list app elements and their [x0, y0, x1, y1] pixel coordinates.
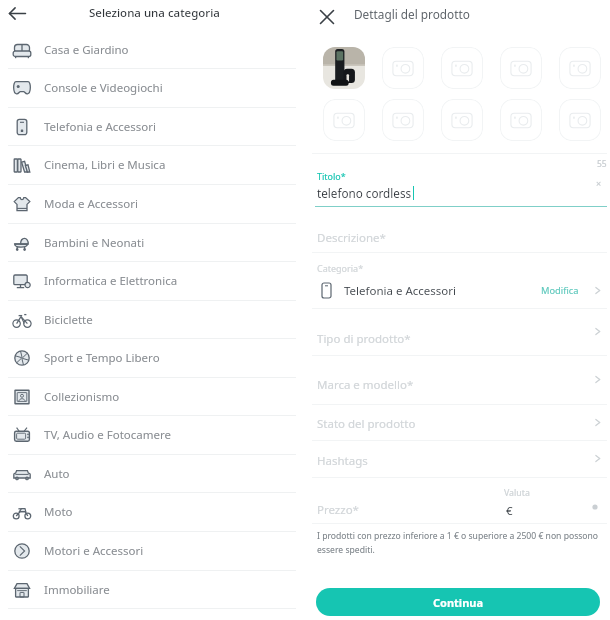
staticText: Auto [44, 466, 70, 482]
button[interactable]: Biciclette [0, 300, 305, 339]
staticText: Modifica [541, 284, 579, 297]
button[interactable]: Add photo [382, 99, 424, 141]
staticText: Hashtags [317, 453, 368, 469]
staticText: Informatica e Elettronica [44, 273, 178, 289]
staticText: Sport e Tempo Libero [44, 350, 160, 366]
button[interactable]: Immobiliare [0, 570, 305, 609]
staticText: Moto [44, 504, 73, 520]
button[interactable]: Telefonia e Accessori [0, 107, 305, 146]
button[interactable]: Add photo [441, 47, 483, 89]
staticText: € [506, 503, 513, 519]
button[interactable]: Tipo di prodotto* [312, 308, 607, 355]
staticText: Titolo* [317, 170, 346, 182]
button[interactable]: Sport e Tempo Libero [0, 338, 305, 377]
staticText: Continua [433, 595, 484, 610]
staticText: Bambini e Neonati [44, 235, 145, 251]
staticText: Motori e Accessori [44, 543, 144, 559]
button[interactable]: Add photo [559, 47, 601, 89]
button[interactable]: Add photo [500, 99, 542, 141]
staticText: Telefonia e Accessori [44, 119, 156, 135]
button[interactable]: Clear title [590, 174, 607, 191]
button[interactable]: Add photo [323, 99, 365, 141]
staticText: Telefonia e Accessori [344, 283, 456, 299]
staticText: I prodotti con prezzo inferiore a 1 € o … [317, 530, 599, 555]
button[interactable]: Add photo [441, 99, 483, 141]
staticText: Biciclette [44, 312, 93, 328]
button[interactable]: Informatica e Elettronica [0, 261, 305, 300]
button[interactable]: Descrizione* [312, 207, 607, 252]
staticText: Seleziona una categoria [89, 5, 220, 21]
staticText: TV, Audio e Fotocamere [44, 427, 171, 443]
button[interactable]: Auto [0, 454, 305, 493]
button[interactable]: Moda e Accessori [0, 184, 305, 223]
button[interactable]: Marca e modello* [312, 355, 607, 404]
staticText: Immobiliare [44, 582, 110, 598]
staticText: Marca e modello* [317, 377, 414, 393]
button[interactable]: Stato del prodotto [312, 404, 607, 440]
button[interactable]: Add photo [382, 47, 424, 89]
button[interactable]: Add photo [323, 47, 365, 89]
button[interactable]: Hashtags [312, 440, 607, 477]
button[interactable]: Telefonia e Accessori [317, 280, 603, 301]
button[interactable]: Close [312, 2, 341, 31]
button[interactable]: Casa e Giardino [0, 30, 305, 69]
button[interactable]: Continua [316, 588, 600, 616]
staticText: Dettagli del prodotto [354, 6, 470, 22]
button[interactable]: Add photo [500, 47, 542, 89]
button[interactable]: TV, Audio e Fotocamere [0, 415, 305, 454]
staticText: Descrizione* [317, 230, 386, 246]
button[interactable]: Add photo [559, 99, 601, 141]
staticText: Categoria* [317, 262, 364, 274]
staticText: Stato del prodotto [317, 416, 416, 432]
button[interactable]: Console e Videogiochi [0, 68, 305, 107]
staticText: Valuta [504, 487, 530, 499]
staticText: 55 [597, 158, 607, 170]
button[interactable]: Prezzo* [312, 478, 492, 523]
button[interactable]: Moto [0, 492, 305, 531]
button[interactable]: Collezionismo [0, 377, 305, 416]
staticText: Console e Videogiochi [44, 80, 163, 96]
button[interactable]: Bambini e Neonati [0, 223, 305, 262]
button[interactable]: Altro [0, 608, 305, 620]
staticText: Collezionismo [44, 389, 120, 405]
staticText: Tipo di prodotto* [317, 331, 411, 347]
button[interactable]: Motori e Accessori [0, 531, 305, 570]
staticText: Cinema, Libri e Musica [44, 157, 166, 173]
staticText: × [596, 177, 602, 189]
staticText: telefono cordless [317, 185, 412, 201]
staticText: Moda e Accessori [44, 196, 138, 212]
staticText: Casa e Giardino [44, 42, 129, 58]
button[interactable]: Titolo* [312, 154, 587, 206]
button[interactable]: Cinema, Libri e Musica [0, 145, 305, 184]
button[interactable]: Back [3, 0, 32, 28]
staticText: Prezzo* [317, 502, 359, 518]
